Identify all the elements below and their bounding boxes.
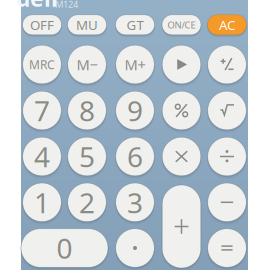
button[interactable]: GT	[112, 12, 157, 38]
staticText: 0	[56, 229, 72, 267]
staticText: MU	[76, 16, 98, 34]
staticText: 7	[34, 92, 50, 129]
staticText: M+	[124, 55, 145, 74]
button[interactable]: 3	[113, 180, 157, 225]
staticText: 8	[79, 92, 95, 129]
button[interactable]: MRC	[20, 42, 64, 87]
button[interactable]: MU	[64, 12, 109, 38]
staticText: 9	[127, 92, 143, 129]
button[interactable]: Square root	[205, 88, 249, 133]
button[interactable]: 5	[65, 134, 109, 179]
button[interactable]: 0	[18, 226, 110, 270]
button[interactable]: 4	[20, 134, 64, 179]
staticText: M124	[55, 0, 78, 10]
staticText: GT	[126, 16, 143, 34]
staticText: MRC	[29, 56, 55, 72]
button[interactable]: Divide	[205, 134, 249, 179]
button[interactable]: Decimal point	[113, 226, 157, 270]
staticText: AC	[219, 16, 235, 34]
staticText: 4	[34, 138, 50, 175]
button[interactable]: M+	[113, 42, 157, 87]
staticText: 2	[79, 184, 95, 221]
button[interactable]: OFF	[19, 12, 64, 38]
button[interactable]: Multiply	[159, 134, 204, 179]
staticText: ON/CE	[167, 19, 195, 31]
button[interactable]: 6	[113, 134, 157, 179]
button[interactable]: 2	[65, 180, 109, 225]
button[interactable]: Play	[159, 42, 204, 87]
button[interactable]: M−	[65, 42, 109, 87]
button[interactable]: Add	[159, 182, 204, 270]
staticText: 5	[79, 138, 95, 175]
staticText: 3	[127, 184, 143, 221]
button[interactable]: Subtract	[205, 180, 249, 225]
button[interactable]: Sign	[205, 42, 249, 87]
button[interactable]: AC	[204, 12, 249, 38]
button[interactable]: Equals	[205, 226, 249, 270]
button[interactable]: 1	[20, 180, 64, 225]
button[interactable]: 9	[113, 88, 157, 133]
button[interactable]: ON/CE	[159, 12, 204, 38]
staticText: M−	[76, 55, 97, 74]
button[interactable]: Percent	[159, 88, 204, 133]
staticText: deli	[16, 0, 58, 13]
button[interactable]: 7	[20, 88, 64, 133]
button[interactable]: 8	[65, 88, 109, 133]
staticText: 1	[34, 184, 50, 221]
staticText: 6	[127, 138, 143, 175]
staticText: OFF	[30, 16, 54, 34]
